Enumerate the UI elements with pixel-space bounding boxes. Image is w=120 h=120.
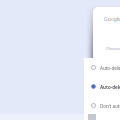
button[interactable]: Auto-delete activity bbox=[84, 59, 120, 76]
staticText: Choose how long bbox=[106, 46, 120, 51]
button[interactable]: Don't auto-delete act bbox=[84, 97, 120, 114]
button[interactable]: Auto-delete activity bbox=[84, 78, 120, 95]
staticText: Google Acco bbox=[104, 16, 120, 23]
staticText: Don't auto-delete act bbox=[100, 103, 120, 109]
staticText: Auto-delete activity bbox=[100, 65, 120, 71]
staticText: Auto-delete activity bbox=[100, 84, 120, 90]
